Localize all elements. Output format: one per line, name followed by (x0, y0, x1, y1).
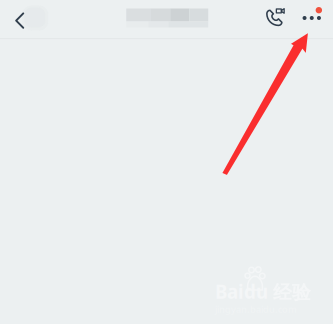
button[interactable]: Back (6, 2, 41, 35)
staticText: Baidu 经验 (215, 279, 311, 304)
button[interactable]: Video call (6, 2, 290, 32)
button[interactable]: More options (6, 2, 327, 28)
